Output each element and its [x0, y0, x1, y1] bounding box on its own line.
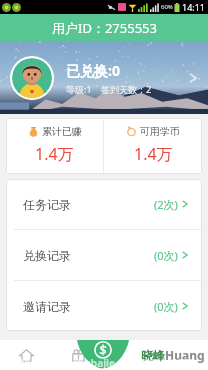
- staticText: 60%: [161, 3, 173, 11]
- button[interactable]: Gifts: [52, 340, 104, 370]
- button[interactable]: Home: [0, 340, 52, 370]
- button[interactable]: 邀请记录: [6, 281, 202, 331]
- staticText: 可用学币: [140, 125, 180, 138]
- staticText: (0次): [154, 248, 178, 263]
- staticText: 等级:1: [66, 83, 92, 95]
- button[interactable]: 累计已赚: [6, 118, 103, 174]
- button[interactable]: Profile avatar: [0, 42, 208, 114]
- staticText: 任务记录: [23, 197, 71, 212]
- staticText: 1.4万: [134, 143, 173, 165]
- button[interactable]: 可用学币: [104, 118, 202, 174]
- staticText: 邀请记录: [23, 299, 71, 314]
- button[interactable]: 任务记录: [6, 179, 202, 229]
- staticText: 14:11: [182, 1, 206, 13]
- staticText: 累计已赚: [42, 125, 82, 138]
- staticText: 签到天数：2: [101, 83, 152, 95]
- button[interactable]: 兑换记录: [6, 230, 202, 280]
- staticText: 已兑换:0: [66, 61, 120, 80]
- staticText: (2次): [154, 197, 178, 212]
- staticText: (0次): [154, 299, 178, 314]
- button[interactable]: Earn coins: [77, 340, 129, 370]
- staticText: 1.4万: [35, 143, 74, 165]
- button[interactable]: Profile avatar: [12, 58, 52, 98]
- staticText: http://home.zhubajie.com/104143877/: [9, 356, 199, 370]
- staticText: 晓峰: [141, 348, 165, 363]
- staticText: 用户ID：2755553: [52, 19, 157, 37]
- staticText: Huang: [165, 347, 205, 363]
- staticText: 兑换记录: [23, 248, 71, 263]
